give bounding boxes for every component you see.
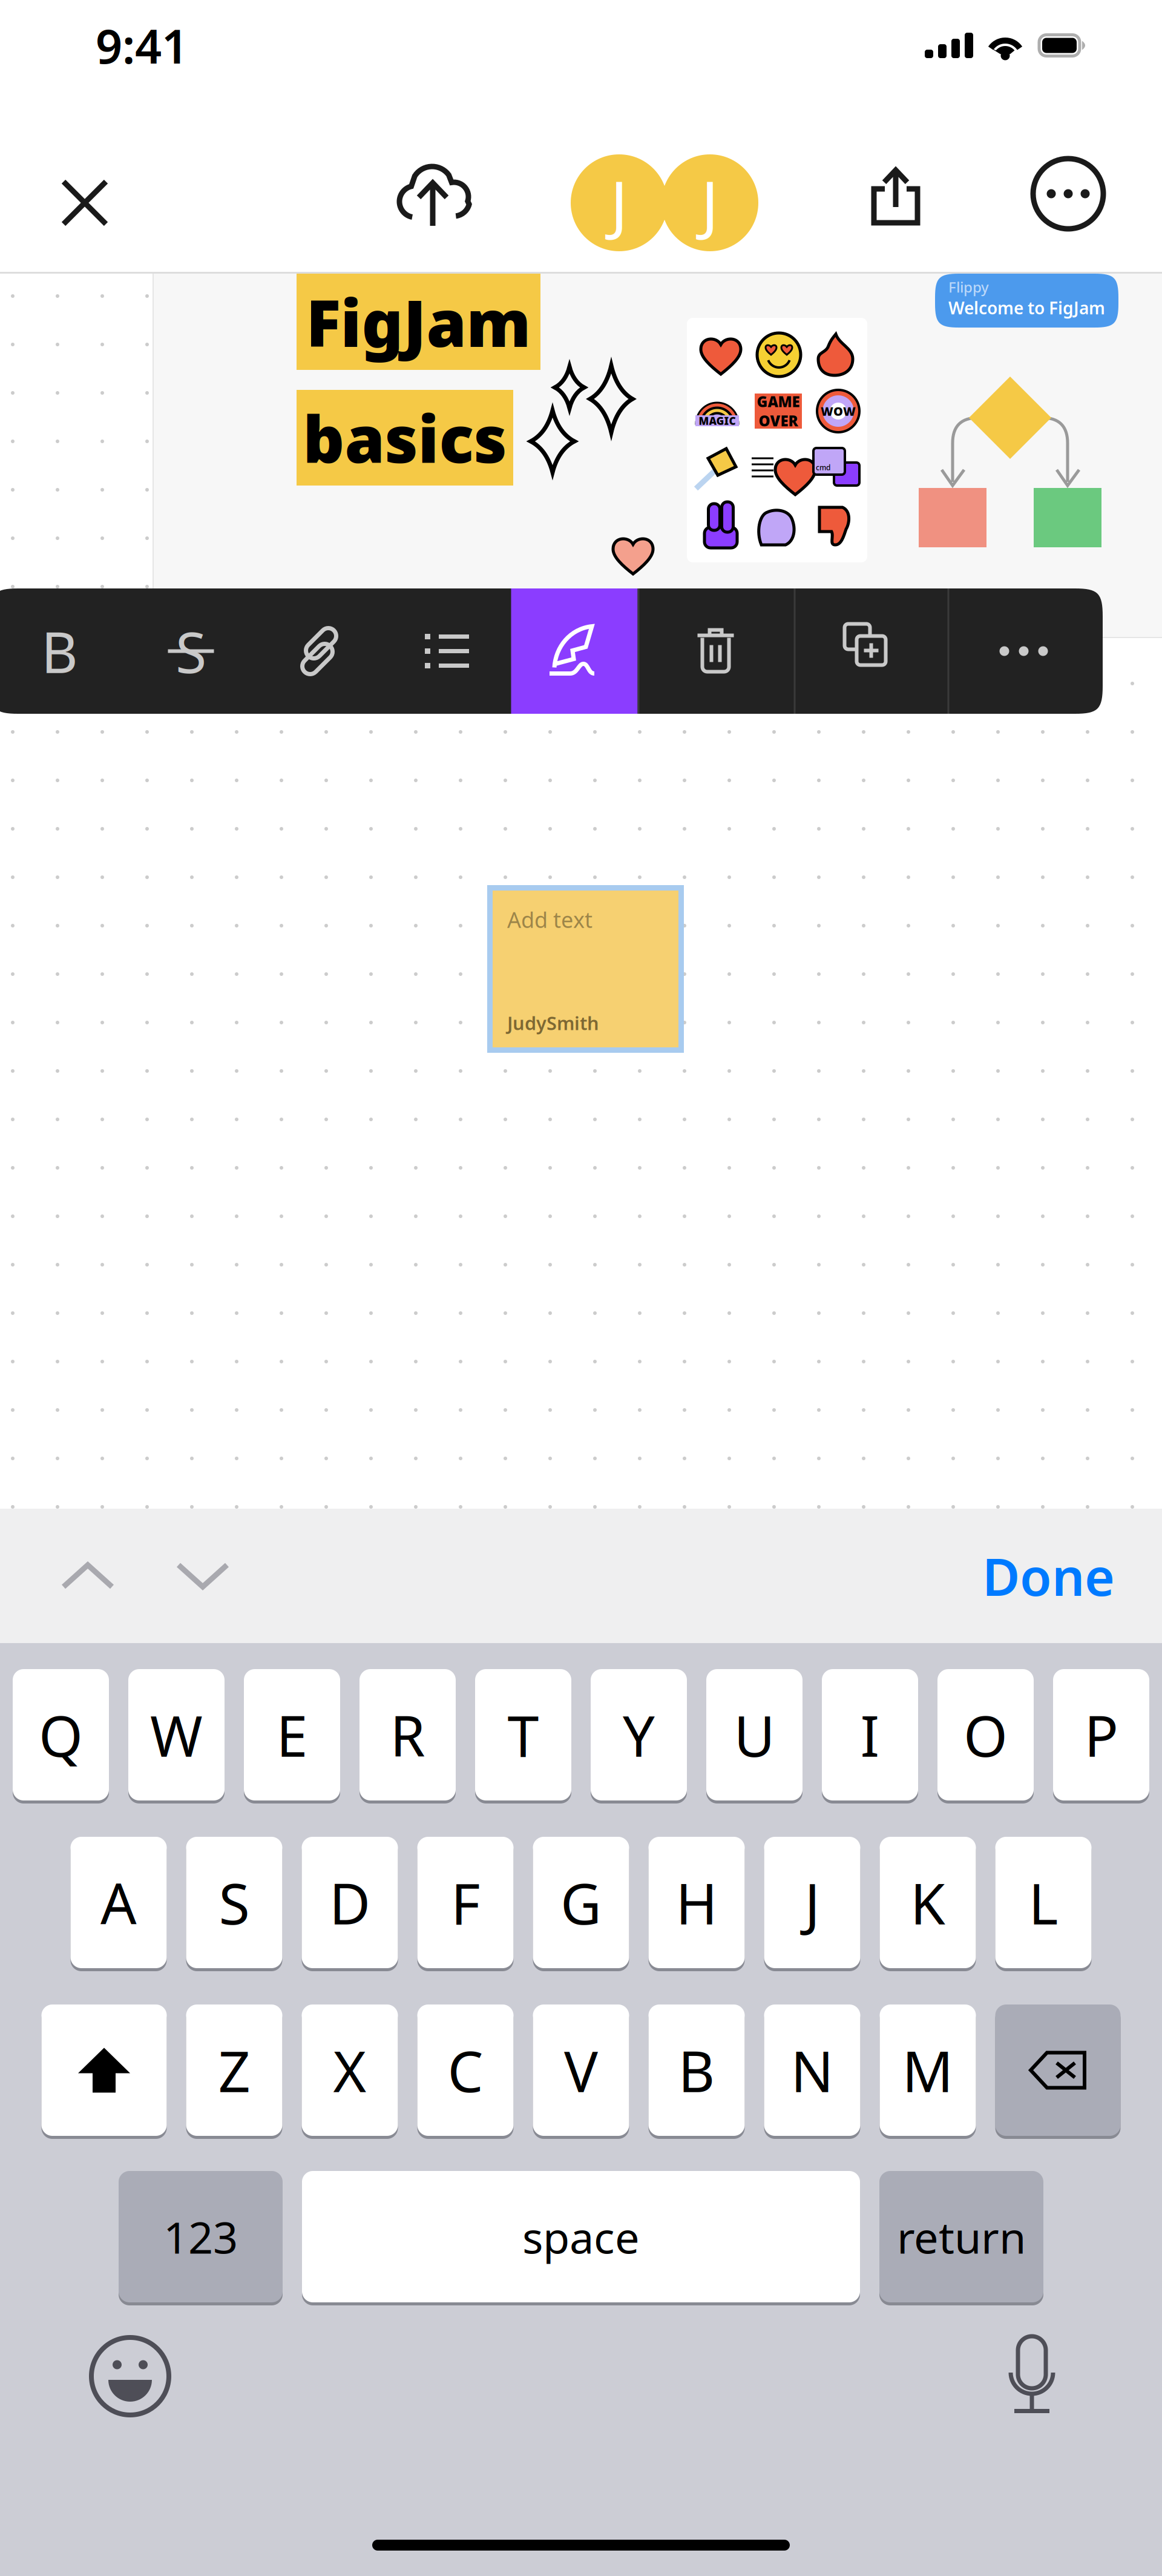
button[interactable]: Emoji keyboard xyxy=(85,2331,176,2422)
button[interactable]: Delete xyxy=(995,2004,1121,2139)
staticText: J xyxy=(610,160,628,246)
button[interactable]: C xyxy=(417,2004,514,2139)
button[interactable]: space xyxy=(302,2171,860,2305)
staticText: 9:41 xyxy=(96,14,188,77)
button[interactable]: Shift xyxy=(41,2004,167,2139)
button[interactable]: D xyxy=(302,1837,398,1971)
button[interactable]: O xyxy=(937,1669,1034,1804)
staticText: A xyxy=(100,1865,137,1940)
button[interactable]: H xyxy=(648,1837,745,1971)
staticText: X xyxy=(333,2033,366,2108)
staticText: WOW xyxy=(821,403,856,419)
button[interactable]: Save to cloud xyxy=(387,151,484,242)
button[interactable]: Duplicate xyxy=(794,588,947,714)
staticText: N xyxy=(791,2033,834,2108)
button[interactable]: return xyxy=(879,2171,1043,2305)
button[interactable]: I xyxy=(822,1669,918,1804)
button[interactable]: S xyxy=(186,1837,282,1971)
staticText: D xyxy=(329,1865,370,1940)
staticText: U xyxy=(734,1697,775,1772)
button[interactable]: N xyxy=(764,2004,860,2139)
staticText: J xyxy=(701,160,719,246)
button[interactable]: K xyxy=(880,1837,976,1971)
staticText: S xyxy=(176,614,206,689)
button[interactable]: F xyxy=(417,1837,514,1971)
staticText: MAGIC xyxy=(699,414,736,428)
staticText: Q xyxy=(39,1697,83,1772)
staticText: V xyxy=(564,2033,598,2108)
staticText: space xyxy=(522,2208,640,2266)
button[interactable]: Delete xyxy=(638,588,794,714)
button[interactable]: Draw xyxy=(511,588,638,714)
staticText: H xyxy=(676,1865,717,1940)
button[interactable]: Previous field xyxy=(30,1537,145,1615)
button[interactable]: Strikethrough xyxy=(126,588,256,714)
staticText: S xyxy=(219,1865,250,1940)
staticText: GAME xyxy=(757,392,800,411)
staticText: Done xyxy=(982,1542,1115,1610)
staticText: Y xyxy=(623,1697,655,1772)
staticText: T xyxy=(507,1697,539,1772)
staticText: B xyxy=(678,2033,715,2108)
button[interactable]: Y xyxy=(591,1669,687,1804)
button[interactable]: W xyxy=(128,1669,225,1804)
staticText: JudySmith xyxy=(507,1011,599,1035)
button[interactable]: T xyxy=(475,1669,571,1804)
button[interactable]: Link xyxy=(256,588,383,714)
button[interactable]: J xyxy=(764,1837,860,1971)
button[interactable]: Done xyxy=(982,1537,1115,1615)
staticText: R xyxy=(390,1697,425,1772)
staticText: C xyxy=(448,2033,483,2108)
staticText: I xyxy=(860,1697,880,1772)
staticText: O xyxy=(963,1697,1008,1772)
button[interactable]: E xyxy=(244,1669,340,1804)
button[interactable]: B xyxy=(648,2004,745,2139)
button[interactable]: X xyxy=(302,2004,398,2139)
staticText: E xyxy=(276,1697,308,1772)
staticText: Flippy xyxy=(948,277,989,297)
button[interactable]: R xyxy=(359,1669,456,1804)
button[interactable]: Bold xyxy=(0,588,126,714)
button[interactable]: Close xyxy=(36,160,133,245)
staticText: J xyxy=(805,1865,820,1940)
button[interactable]: U xyxy=(706,1669,803,1804)
button[interactable]: Dictation xyxy=(986,2331,1077,2422)
button[interactable]: More options xyxy=(1020,148,1117,239)
button[interactable]: Share xyxy=(847,151,944,242)
staticText: M xyxy=(902,2033,954,2108)
button[interactable]: Collaborators xyxy=(571,151,764,254)
button[interactable]: Q xyxy=(13,1669,109,1804)
staticText: basics xyxy=(303,395,507,481)
staticText: F xyxy=(451,1865,480,1940)
button[interactable]: List xyxy=(383,588,511,714)
staticText: P xyxy=(1084,1697,1118,1772)
staticText: G xyxy=(560,1865,602,1940)
staticText: L xyxy=(1029,1865,1058,1940)
staticText: OVER xyxy=(759,411,798,430)
staticText: FigJam xyxy=(306,279,531,365)
button[interactable]: L xyxy=(995,1837,1091,1971)
staticText: Add text xyxy=(507,905,592,934)
button[interactable]: Z xyxy=(186,2004,282,2139)
button[interactable]: Next field xyxy=(145,1537,260,1615)
button[interactable]: P xyxy=(1053,1669,1149,1804)
button[interactable]: More xyxy=(947,588,1100,714)
button[interactable]: V xyxy=(533,2004,629,2139)
staticText: B xyxy=(41,614,78,689)
staticText: K xyxy=(910,1865,945,1940)
staticText: Welcome to FigJam xyxy=(948,297,1105,319)
staticText: W xyxy=(150,1697,203,1772)
staticText: return xyxy=(897,2208,1026,2266)
button[interactable]: M xyxy=(880,2004,976,2139)
staticText: Z xyxy=(218,2033,250,2108)
button[interactable]: 123 xyxy=(119,2171,283,2305)
staticText: cmd xyxy=(816,463,830,472)
staticText: 123 xyxy=(163,2208,238,2266)
button[interactable]: A xyxy=(71,1837,167,1971)
button[interactable]: G xyxy=(533,1837,629,1971)
